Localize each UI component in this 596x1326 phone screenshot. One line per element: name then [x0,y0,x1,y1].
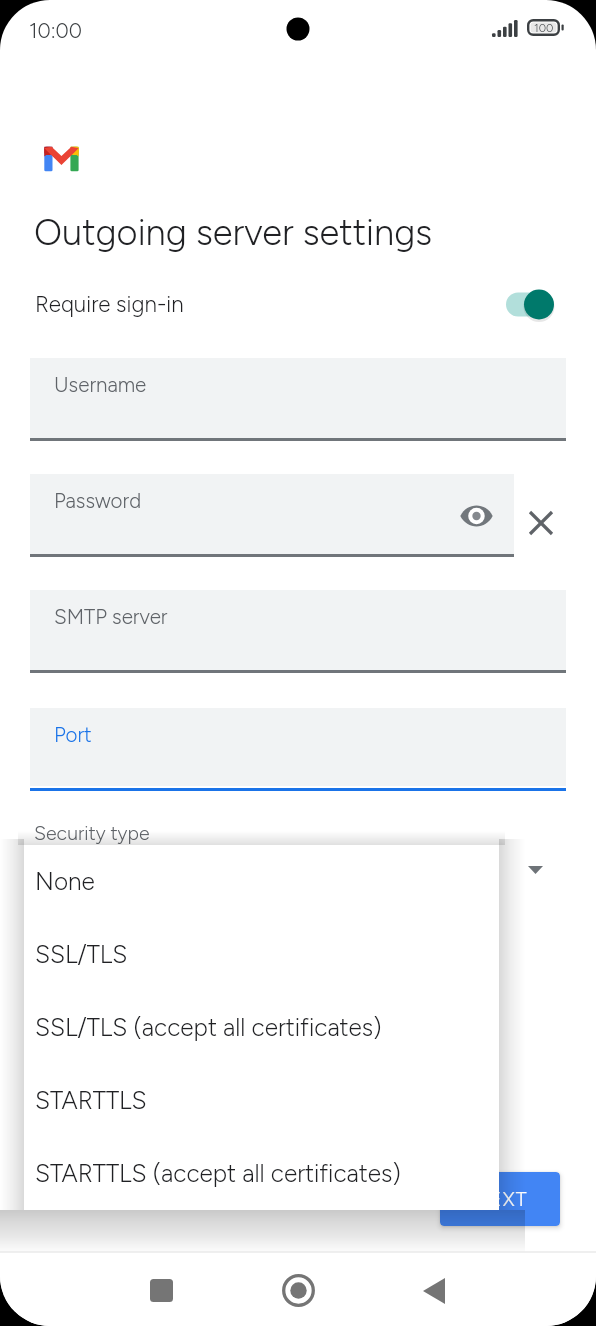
staticText: 100 [534,21,554,35]
staticText: None [35,867,95,896]
staticText: Require sign-in [35,291,184,318]
staticText: STARTTLS [35,1086,147,1115]
button[interactable]: Password [30,474,514,557]
button[interactable]: Clear password [527,509,555,537]
button[interactable]: Show password [457,499,495,533]
button[interactable]: STARTTLS [24,1064,499,1137]
staticText: SMTP server [54,604,168,629]
staticText: SSL/TLS [35,940,128,969]
button[interactable]: Require sign-in [500,284,566,326]
staticText: Outgoing server settings [34,211,433,255]
staticText: SSL/TLS (accept all certificates) [35,1013,382,1042]
button[interactable]: SSL/TLS [24,918,499,991]
button[interactable]: Username [30,358,566,441]
button[interactable]: Port [30,708,566,789]
button[interactable]: Gmail [38,136,83,182]
button[interactable]: Home [267,1259,329,1321]
staticText: Password [54,488,142,513]
button[interactable]: Expand security type [518,852,553,887]
staticText: NEXT [473,1187,528,1211]
button[interactable]: STARTTLS (accept all certificates) [24,1137,499,1210]
staticText: 10:00 [29,18,82,43]
button[interactable]: NEXT [440,1172,560,1226]
button[interactable]: None [24,845,499,918]
button[interactable]: Recent apps [131,1260,192,1321]
staticText: Port [54,722,92,747]
staticText: STARTTLS (accept all certificates) [35,1159,401,1188]
staticText: Security type [34,821,150,844]
button[interactable]: SMTP server [30,590,566,673]
staticText: Username [54,372,147,397]
button[interactable]: Back [403,1260,464,1321]
button[interactable]: SSL/TLS (accept all certificates) [24,991,499,1064]
